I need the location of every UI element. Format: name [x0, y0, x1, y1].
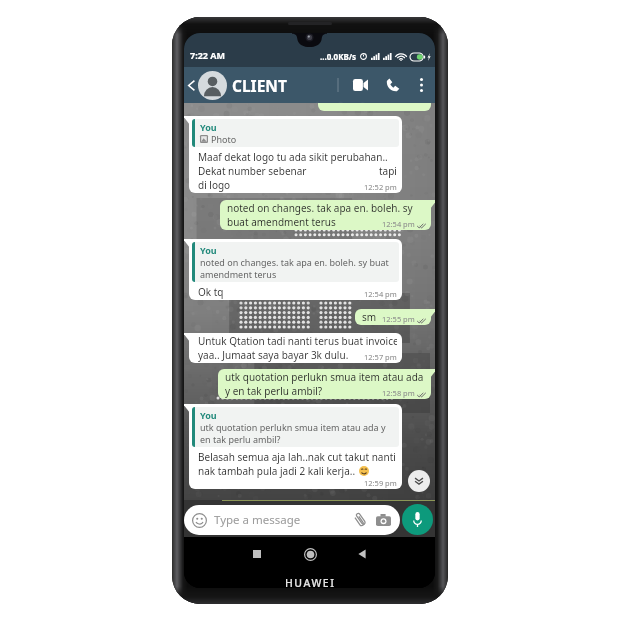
staticText: Photo: [211, 133, 237, 145]
staticText: nak tambah pula jadi 2 kali kerja..: [198, 464, 356, 478]
staticText: CLIENT: [232, 75, 287, 96]
staticText: y en tak perlu ambil?: [225, 384, 323, 398]
staticText: di logo: [198, 178, 231, 192]
staticText: Ok tq: [198, 285, 224, 299]
staticText: en tak perlu ambil?: [200, 433, 281, 445]
button[interactable]: Home: [298, 542, 322, 566]
staticText: 7:22 AM: [190, 49, 226, 61]
button[interactable]: CLIENT: [232, 75, 287, 96]
staticText: Belasah semua aja lah..nak cut takut nan…: [198, 450, 396, 464]
button[interactable]: Type a message: [184, 505, 400, 535]
button[interactable]: Untuk Qtation tadi nanti terus buat invo…: [189, 333, 402, 363]
staticText: Maaf dekat logo tu ada sikit perubahan..: [198, 150, 388, 164]
staticText: You: [200, 121, 217, 133]
staticText: Untuk Qtation tadi nanti terus buat invo…: [198, 334, 397, 348]
staticText: You: [200, 409, 217, 421]
button[interactable]: More options: [410, 74, 432, 96]
button[interactable]: You: [189, 404, 402, 489]
button[interactable]: Contact photo: [198, 71, 227, 100]
staticText: 12:59 pm: [364, 478, 397, 488]
staticText: 12:57 pm: [364, 352, 397, 362]
button[interactable]: Call: [380, 72, 406, 98]
staticText: 12:54 pm: [364, 289, 397, 299]
staticText: noted on changes. tak apa en. boleh. sy …: [200, 256, 389, 268]
staticText: utk quotation perlukn smua item atau ada…: [200, 421, 386, 433]
button[interactable]: You: [189, 239, 402, 300]
staticText: buat amendment terus: [227, 215, 336, 229]
staticText: 12:58 pm: [382, 388, 415, 398]
staticText: sm: [362, 310, 377, 324]
staticText: Type a message: [214, 512, 301, 528]
button[interactable]: utk quotation perlukn smua item atau ada: [218, 369, 431, 399]
button[interactable]: Back: [184, 75, 198, 95]
staticText: tapi: [379, 164, 397, 178]
button[interactable]: You: [189, 116, 402, 193]
staticText: 12:55 pm: [382, 314, 415, 324]
staticText: HUAWEI: [285, 576, 336, 590]
staticText: noted on changes. tak apa en. boleh. sy: [227, 201, 413, 215]
button[interactable]: Scroll to bottom: [408, 470, 430, 492]
button[interactable]: Voice message: [402, 504, 433, 535]
staticText: ...0.0KB/s: [320, 51, 357, 62]
button[interactable]: noted on changes. tak apa en. boleh. sy: [220, 200, 431, 230]
staticText: utk quotation perlukn smua item atau ada: [225, 370, 424, 384]
staticText: Dekat number sebenar: [198, 164, 307, 178]
staticText: 12:54 pm: [382, 219, 415, 229]
staticText: 12:52 pm: [364, 182, 397, 192]
button[interactable]: Recents: [245, 542, 269, 566]
staticText: amendment terus: [200, 268, 277, 280]
staticText: yaa.. Jumaat saya bayar 3k dulu.: [198, 348, 349, 362]
button[interactable]: Video call: [347, 72, 373, 98]
button[interactable]: sm: [355, 309, 431, 325]
staticText: You: [200, 244, 217, 256]
button[interactable]: Back: [350, 542, 374, 566]
